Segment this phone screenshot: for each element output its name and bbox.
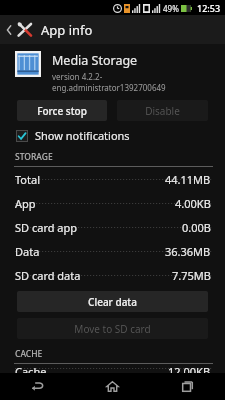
staticText: Total xyxy=(15,172,40,187)
button[interactable]: Back xyxy=(0,373,75,400)
staticText: Cache xyxy=(15,364,47,373)
button[interactable]: SD card app xyxy=(0,215,225,239)
button[interactable]: Move to SD card xyxy=(17,318,208,339)
button[interactable]: Show notifications xyxy=(16,128,130,143)
staticText: Disable xyxy=(145,104,180,118)
button[interactable]: Back to App info xyxy=(0,15,225,44)
staticText: 4.00KB xyxy=(175,196,211,211)
button[interactable]: Disable xyxy=(117,100,208,121)
staticText: 7.75MB xyxy=(172,268,211,283)
button[interactable]: Clear data xyxy=(17,291,208,312)
staticText: Show notifications xyxy=(35,128,130,143)
staticText: 36.36MB xyxy=(165,244,211,259)
staticText: version 4.2.2- xyxy=(52,71,103,82)
button[interactable]: Force stop xyxy=(17,100,107,121)
button[interactable]: Recent apps xyxy=(150,373,225,400)
staticText: CACHE xyxy=(15,348,43,360)
staticText: 0.00B xyxy=(182,220,211,235)
staticText: 12:53 xyxy=(197,2,221,14)
staticText: 12.00KB xyxy=(168,364,211,373)
staticText: Data xyxy=(15,244,40,259)
staticText: SD card data xyxy=(15,268,81,283)
staticText: Move to SD card xyxy=(74,322,151,336)
staticText: 44.11MB xyxy=(165,172,211,187)
staticText: Media Storage xyxy=(52,52,138,69)
button[interactable]: SD card data xyxy=(0,263,225,287)
button[interactable]: Home xyxy=(75,373,150,400)
staticText: eng.administrator1392700649 xyxy=(52,82,166,93)
button[interactable]: App xyxy=(0,191,225,215)
staticText: App xyxy=(15,196,36,211)
staticText: Clear data xyxy=(88,295,137,309)
staticText: App info xyxy=(41,21,93,39)
button[interactable]: Total xyxy=(0,167,225,191)
staticText: SD card app xyxy=(15,220,78,235)
staticText: Force stop xyxy=(37,104,87,118)
button[interactable]: Data xyxy=(0,239,225,263)
staticText: STORAGE xyxy=(15,151,53,163)
staticText: 49% xyxy=(163,3,179,14)
button[interactable]: Cache xyxy=(0,364,225,373)
